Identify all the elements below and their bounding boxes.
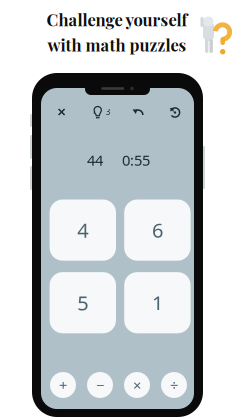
staticText: + xyxy=(59,375,67,395)
button[interactable]: Close xyxy=(51,101,73,123)
button[interactable]: Undo xyxy=(127,101,149,123)
staticText: 6 xyxy=(152,217,163,243)
staticText: × xyxy=(133,375,141,395)
staticText: − xyxy=(96,375,104,395)
staticText: 5 xyxy=(77,289,88,316)
staticText: 44 xyxy=(87,150,103,170)
button[interactable]: 4 xyxy=(50,199,116,261)
staticText: Challenge yourself xyxy=(46,8,187,30)
staticText: 0:55 xyxy=(122,150,150,170)
staticText: ÷ xyxy=(170,375,178,395)
staticText: 3 xyxy=(106,107,111,117)
button[interactable]: ÷ xyxy=(161,372,187,398)
staticText: 4 xyxy=(77,217,88,243)
button[interactable]: 5 xyxy=(50,272,116,333)
button[interactable]: + xyxy=(50,372,76,398)
button[interactable]: 1 xyxy=(124,272,191,333)
button[interactable]: 6 xyxy=(124,199,191,261)
button[interactable]: Hints, 3 remaining xyxy=(89,101,113,123)
button[interactable]: × xyxy=(124,372,150,398)
staticText: 1 xyxy=(152,289,163,316)
staticText: with math puzzles xyxy=(47,33,186,55)
button[interactable]: Restart xyxy=(164,101,186,123)
button[interactable]: − xyxy=(87,372,113,398)
